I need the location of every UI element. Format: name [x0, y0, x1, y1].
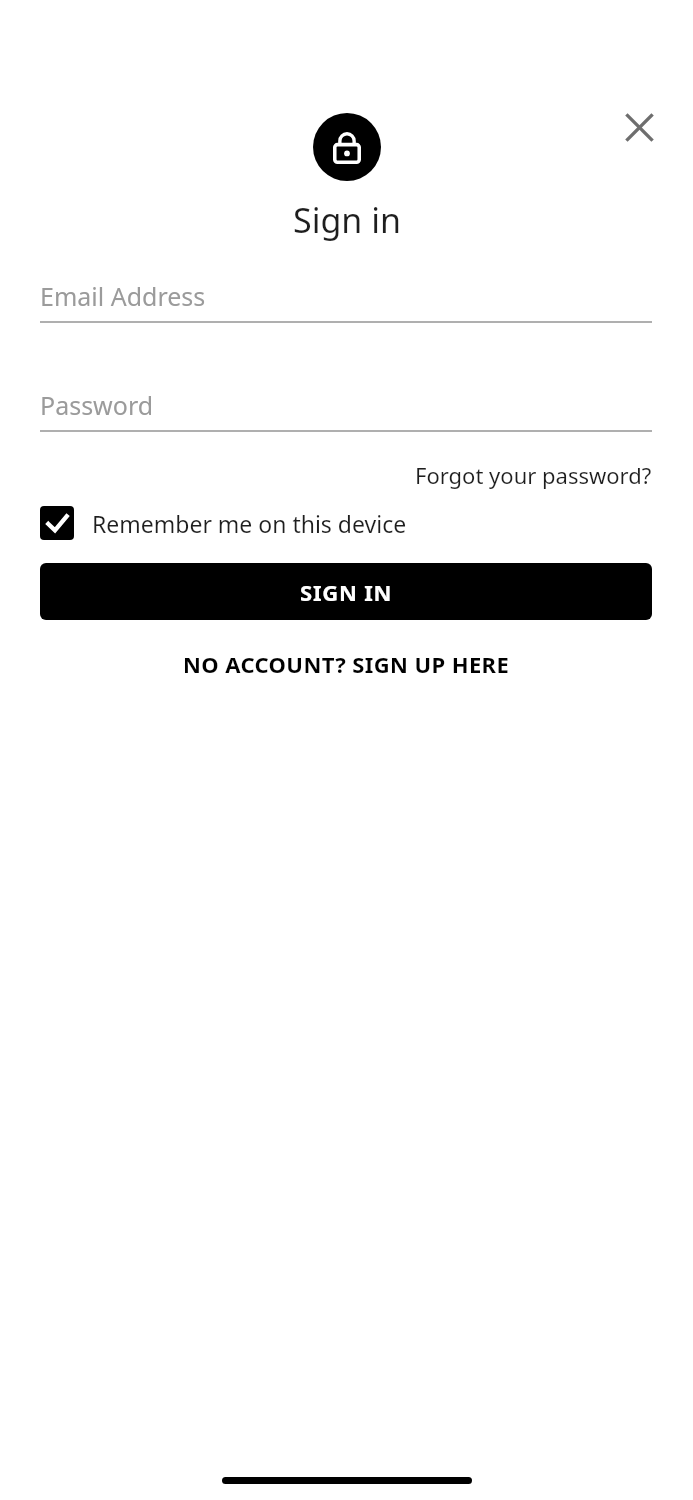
staticText: Remember me on this device — [92, 508, 407, 539]
staticText: Password — [40, 388, 154, 422]
staticText: NO ACCOUNT? SIGN UP HERE — [183, 649, 510, 679]
button[interactable]: SIGN IN — [40, 563, 652, 620]
button[interactable]: Close — [607, 95, 671, 159]
staticText: Sign in — [293, 197, 401, 243]
button[interactable]: NO ACCOUNT? SIGN UP HERE — [183, 649, 510, 679]
button[interactable]: Remember me on this device — [40, 506, 407, 540]
button[interactable]: Email Address — [40, 268, 652, 323]
button[interactable]: Forgot your password? — [415, 460, 652, 490]
staticText: Forgot your password? — [415, 460, 652, 490]
button[interactable]: Password — [40, 377, 652, 432]
staticText: SIGN IN — [300, 577, 393, 607]
staticText: Email Address — [40, 279, 206, 313]
